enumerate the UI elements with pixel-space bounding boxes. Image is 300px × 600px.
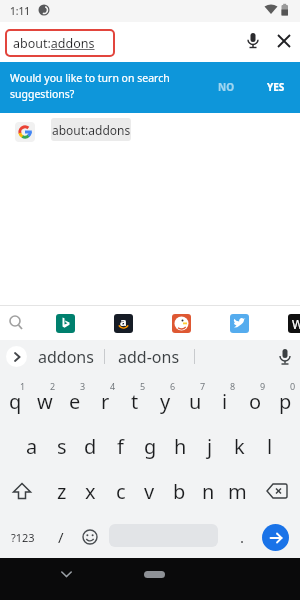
staticText: about:addons (52, 122, 131, 138)
staticText: h (174, 433, 187, 460)
button[interactable]: . (227, 515, 257, 559)
staticText: t (131, 388, 139, 415)
staticText: W (292, 316, 300, 332)
button[interactable]: g (136, 424, 165, 468)
button[interactable] (57, 566, 75, 582)
staticText: . (240, 527, 245, 547)
button[interactable] (262, 524, 289, 551)
staticText: q (9, 388, 22, 415)
button[interactable]: addons (38, 344, 94, 369)
staticText: k (234, 433, 245, 460)
button[interactable]: w (30, 379, 60, 423)
staticText: m (228, 478, 247, 505)
button[interactable]: i (210, 379, 240, 423)
staticText: add-ons (118, 346, 180, 368)
staticText: 1:11 (10, 4, 30, 18)
staticText: s (57, 433, 67, 460)
button[interactable]: z (47, 469, 76, 513)
button[interactable] (274, 31, 294, 51)
staticText: u (189, 388, 202, 415)
button[interactable] (172, 314, 191, 333)
button[interactable]: s (47, 424, 76, 468)
button[interactable]: h (166, 424, 195, 468)
staticText: YES (267, 80, 285, 94)
staticText: n (202, 478, 215, 505)
button[interactable]: o (240, 379, 270, 423)
staticText: 2 (50, 380, 56, 392)
button[interactable]: W (288, 314, 300, 333)
button[interactable] (274, 347, 296, 367)
button[interactable]: j (195, 424, 224, 468)
button[interactable]: about:addons (5, 29, 115, 57)
button[interactable]: f (106, 424, 135, 468)
staticText: 0 (290, 380, 296, 392)
staticText: suggestions? (10, 87, 75, 101)
staticText: l (267, 433, 273, 460)
staticText: z (57, 478, 67, 505)
button[interactable]: v (135, 469, 164, 513)
button[interactable] (144, 571, 165, 578)
button[interactable]: e (60, 379, 90, 423)
staticText: 8 (230, 380, 236, 392)
button[interactable]: a (17, 424, 46, 468)
button[interactable] (256, 469, 298, 513)
button[interactable]: d (76, 424, 105, 468)
staticText: o (249, 388, 262, 415)
staticText: / (58, 527, 64, 547)
staticText: about:addons (13, 35, 95, 52)
button[interactable] (6, 313, 26, 333)
staticText: addons (38, 346, 94, 368)
staticText: p (279, 388, 292, 415)
staticText: c (116, 478, 126, 505)
button[interactable] (76, 515, 104, 559)
button[interactable]: q (0, 379, 30, 423)
staticText: 4 (110, 380, 116, 392)
staticText: 7 (200, 380, 206, 392)
staticText: v (144, 478, 155, 505)
button[interactable]: p (270, 379, 300, 423)
button[interactable] (2, 469, 42, 513)
button[interactable] (6, 346, 27, 367)
staticText: d (84, 433, 97, 460)
staticText: 6 (170, 380, 176, 392)
button[interactable]: l (255, 424, 284, 468)
button[interactable]: ?123 (0, 515, 45, 559)
button[interactable]: y (150, 379, 180, 423)
button[interactable]: b (165, 469, 194, 513)
button[interactable] (243, 30, 263, 54)
staticText: 1 (20, 380, 26, 392)
staticText: NO (218, 80, 235, 94)
button[interactable]: YES (256, 75, 296, 99)
staticText: ?123 (11, 530, 35, 545)
staticText: e (69, 388, 81, 415)
button[interactable]: r (90, 379, 120, 423)
staticText: f (117, 433, 124, 460)
button[interactable]: add-ons (116, 344, 182, 369)
button[interactable]: k (225, 424, 254, 468)
button[interactable]: about:addons (51, 118, 131, 141)
staticText: w (37, 388, 53, 415)
staticText: 5 (140, 380, 146, 392)
staticText: b (173, 478, 186, 505)
button[interactable]: c (106, 469, 135, 513)
button[interactable] (56, 314, 75, 333)
staticText: Would you like to turn on search (10, 71, 170, 85)
staticText: a (26, 433, 38, 460)
button[interactable]: m (223, 469, 252, 513)
button[interactable]: n (194, 469, 223, 513)
staticText: x (85, 478, 96, 505)
staticText: 9 (260, 380, 266, 392)
button[interactable]: a (114, 314, 133, 333)
staticText: r (101, 388, 110, 415)
staticText: 3 (80, 380, 86, 392)
button[interactable]: t (120, 379, 150, 423)
button[interactable]: / (45, 515, 76, 559)
staticText: j (207, 433, 213, 460)
staticText: y (160, 388, 171, 415)
button[interactable]: x (76, 469, 105, 513)
button[interactable]: u (180, 379, 210, 423)
button[interactable] (230, 314, 249, 333)
staticText: g (144, 433, 157, 460)
button[interactable]: NO (208, 75, 244, 99)
